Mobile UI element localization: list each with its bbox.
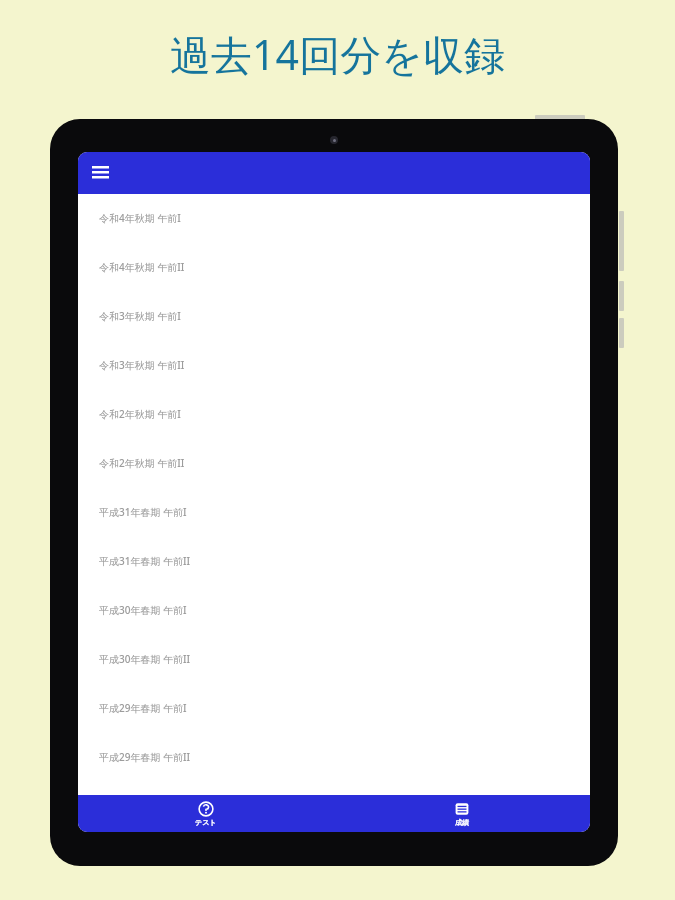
staticText: 平成30年春期 午前I (99, 603, 187, 617)
staticText: 令和3年秋期 午前II (99, 358, 185, 372)
staticText: 令和3年秋期 午前I (99, 309, 181, 323)
button[interactable]: 令和2年秋期 午前I (78, 390, 590, 437)
staticText: 成績 (455, 818, 469, 827)
button[interactable]: 令和4年秋期 午前II (78, 243, 590, 290)
staticText: 平成29年春期 午前II (99, 750, 191, 764)
button[interactable]: 平成31年春期 午前I (78, 488, 590, 535)
button[interactable]: 令和3年秋期 午前I (78, 292, 590, 339)
button[interactable]: Menu (83, 156, 117, 190)
staticText: 令和4年秋期 午前II (99, 260, 185, 274)
button[interactable]: 成績 (334, 795, 590, 832)
staticText: 令和2年秋期 午前II (99, 456, 185, 470)
staticText: 平成30年春期 午前II (99, 652, 191, 666)
button[interactable]: 平成29年春期 午前II (78, 733, 590, 780)
staticText: 平成31年春期 午前II (99, 554, 191, 568)
staticText: 平成31年春期 午前I (99, 505, 187, 519)
button[interactable]: 平成30年春期 午前II (78, 635, 590, 682)
button[interactable]: 令和3年秋期 午前II (78, 341, 590, 388)
button[interactable]: 令和4年秋期 午前I (78, 194, 590, 241)
button[interactable]: 平成30年春期 午前I (78, 586, 590, 633)
button[interactable]: 平成29年春期 午前I (78, 684, 590, 731)
button[interactable]: 令和2年秋期 午前II (78, 439, 590, 486)
staticText: 過去14回分を収録 (170, 26, 505, 82)
staticText: 平成29年春期 午前I (99, 701, 187, 715)
button[interactable]: テスト (78, 795, 334, 832)
staticText: テスト (195, 818, 217, 827)
staticText: 令和4年秋期 午前I (99, 211, 181, 225)
button[interactable]: 平成31年春期 午前II (78, 537, 590, 584)
staticText: 令和2年秋期 午前I (99, 407, 181, 421)
